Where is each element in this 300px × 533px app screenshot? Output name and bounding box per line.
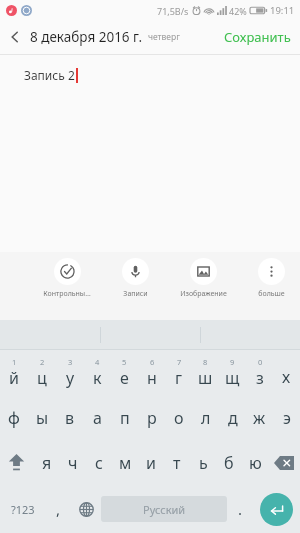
staticText: р [147, 407, 157, 429]
staticText: ь [199, 452, 208, 474]
staticText: с [95, 452, 103, 474]
button[interactable]: р [138, 395, 165, 440]
staticText: 4 [95, 357, 100, 367]
staticText: 1 [12, 357, 17, 367]
staticText: 9 [230, 357, 235, 367]
staticText: б [224, 452, 234, 474]
button[interactable]: 0 [246, 350, 273, 395]
button[interactable]: м [112, 440, 138, 485]
staticText: е [120, 367, 129, 389]
staticText: больше [258, 289, 285, 299]
staticText: Запись 2 [24, 67, 75, 83]
staticText: 8 декабря 2016 г. [30, 28, 143, 46]
staticText: 19:11 [270, 4, 295, 17]
button[interactable]: л [192, 395, 219, 440]
staticText: 3 [68, 357, 73, 367]
button[interactable]: ч [60, 440, 86, 485]
button[interactable]: ы [28, 395, 56, 440]
button[interactable]: ?123 [0, 485, 45, 533]
button[interactable]: ф [0, 395, 28, 440]
button[interactable]: ж [246, 395, 273, 440]
staticText: о [174, 407, 184, 429]
button[interactable]: Изображение [179, 258, 228, 299]
staticText: четверг [148, 31, 180, 43]
button[interactable]: х [273, 350, 300, 395]
staticText: э [283, 407, 291, 429]
button[interactable]: Shift [0, 440, 33, 485]
staticText: Изображение [180, 289, 227, 299]
staticText: , [56, 499, 61, 519]
button[interactable]: Контрольны… [42, 258, 92, 299]
button[interactable]: 9 [219, 350, 246, 395]
button[interactable]: 4 [84, 350, 111, 395]
staticText: н [147, 367, 157, 389]
button[interactable]: 8 [192, 350, 219, 395]
button[interactable]: Enter [260, 493, 293, 526]
staticText: з [256, 367, 264, 389]
staticText: а [93, 407, 102, 429]
button[interactable]: 5 [111, 350, 138, 395]
button[interactable]: Back [0, 22, 30, 52]
staticText: д [228, 407, 238, 429]
staticText: м [119, 452, 132, 474]
staticText: п [120, 407, 130, 429]
button[interactable]: 7 [165, 350, 192, 395]
button[interactable]: Записи [121, 258, 150, 299]
staticText: ч [68, 452, 78, 474]
staticText: ?123 [11, 502, 35, 517]
staticText: у [66, 367, 75, 389]
button[interactable]: д [219, 395, 246, 440]
button[interactable]: а [84, 395, 111, 440]
staticText: Русский [143, 502, 186, 517]
staticText: 71,5B/s [157, 5, 189, 17]
button[interactable]: п [111, 395, 138, 440]
staticText: 6 [150, 357, 155, 367]
staticText: 0 [258, 357, 263, 367]
button[interactable]: Change language [72, 485, 101, 533]
staticText: . [238, 499, 243, 519]
button[interactable]: ю [242, 440, 268, 485]
staticText: г [175, 367, 183, 389]
staticText: ш [198, 367, 213, 389]
button[interactable]: с [86, 440, 112, 485]
button[interactable]: о [165, 395, 192, 440]
staticText: щ [225, 367, 240, 389]
button[interactable]: Сохранить [215, 22, 300, 52]
button[interactable]: 6 [138, 350, 165, 395]
staticText: л [201, 407, 211, 429]
staticText: й [9, 367, 19, 389]
button[interactable]: б [216, 440, 242, 485]
button[interactable]: и [138, 440, 164, 485]
staticText: 8 [203, 357, 208, 367]
staticText: Сохранить [224, 28, 291, 46]
staticText: 2 [40, 357, 45, 367]
button[interactable]: больше [257, 258, 286, 299]
button[interactable]: Backspace [268, 440, 300, 485]
button[interactable]: я [33, 440, 60, 485]
staticText: я [42, 452, 52, 474]
staticText: в [65, 407, 75, 429]
button[interactable]: . [227, 485, 253, 533]
staticText: ц [37, 367, 47, 389]
button[interactable]: 2 [28, 350, 56, 395]
staticText: к [93, 367, 102, 389]
staticText: 42% [229, 5, 247, 17]
staticText: ж [253, 407, 266, 429]
button[interactable]: 1 [0, 350, 28, 395]
staticText: ы [36, 407, 49, 429]
button[interactable]: Русский [101, 496, 227, 522]
button[interactable]: э [273, 395, 300, 440]
staticText: ю [249, 452, 262, 474]
staticText: и [146, 452, 156, 474]
staticText: х [282, 366, 291, 388]
button[interactable]: ь [190, 440, 216, 485]
staticText: 7 [177, 357, 182, 367]
staticText: Контрольны… [43, 289, 91, 299]
button[interactable]: , [45, 485, 72, 533]
button[interactable]: 3 [56, 350, 84, 395]
staticText: 5 [122, 357, 127, 367]
staticText: Записи [123, 289, 148, 299]
button[interactable]: в [56, 395, 84, 440]
staticText: ф [8, 407, 20, 429]
button[interactable]: т [164, 440, 190, 485]
